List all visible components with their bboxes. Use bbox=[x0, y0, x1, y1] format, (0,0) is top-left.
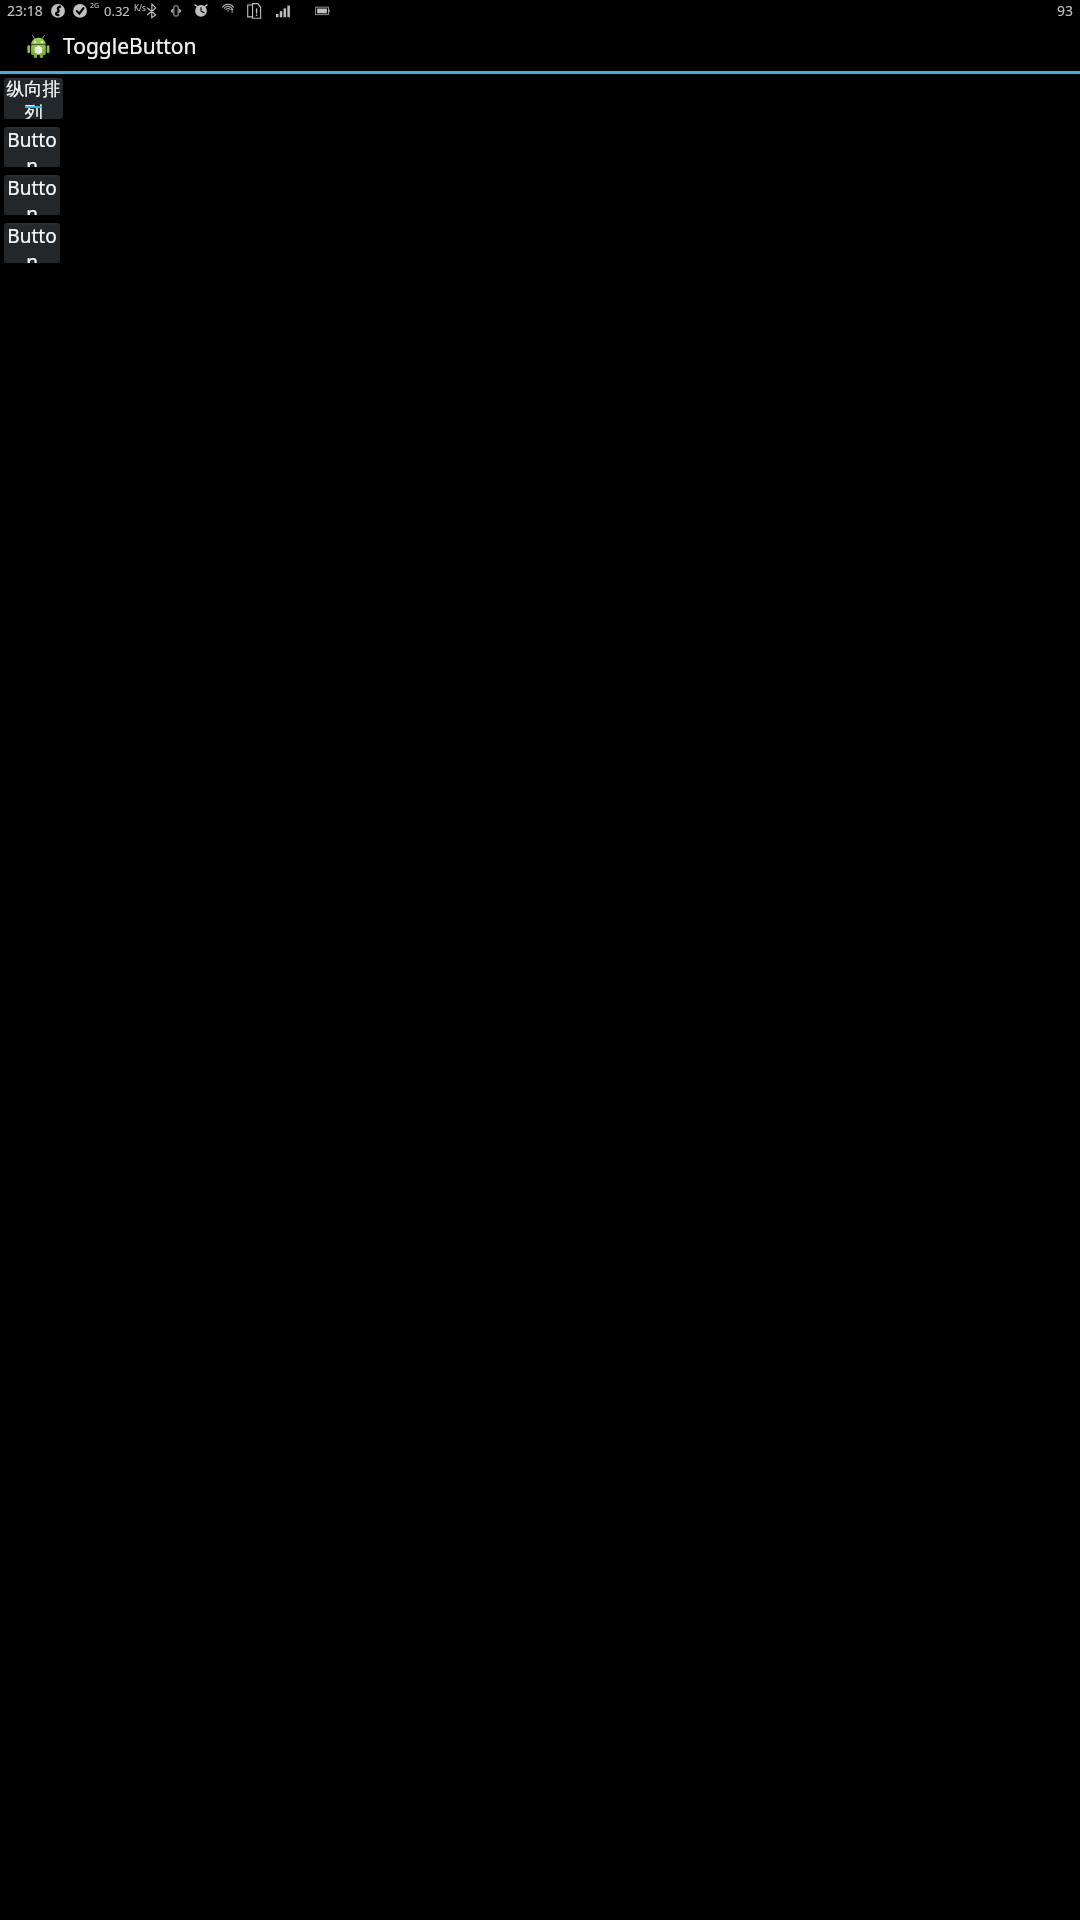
staticText: Button bbox=[4, 127, 60, 167]
staticText: 0.32 bbox=[104, 2, 130, 20]
staticText: ToggleButton bbox=[63, 32, 197, 61]
staticText: 93 bbox=[1057, 1, 1074, 20]
staticText: K/s bbox=[134, 2, 146, 13]
staticText: Button bbox=[4, 223, 60, 263]
button[interactable]: Button bbox=[4, 127, 60, 167]
staticText: 2G bbox=[90, 1, 100, 11]
staticText: 23:18 bbox=[7, 1, 43, 20]
button[interactable]: Button bbox=[4, 223, 60, 263]
staticText: Button bbox=[4, 175, 60, 215]
button[interactable]: 纵向排列 bbox=[4, 78, 63, 119]
staticText: 纵向排列 bbox=[4, 78, 63, 119]
button[interactable]: Button bbox=[4, 175, 60, 215]
